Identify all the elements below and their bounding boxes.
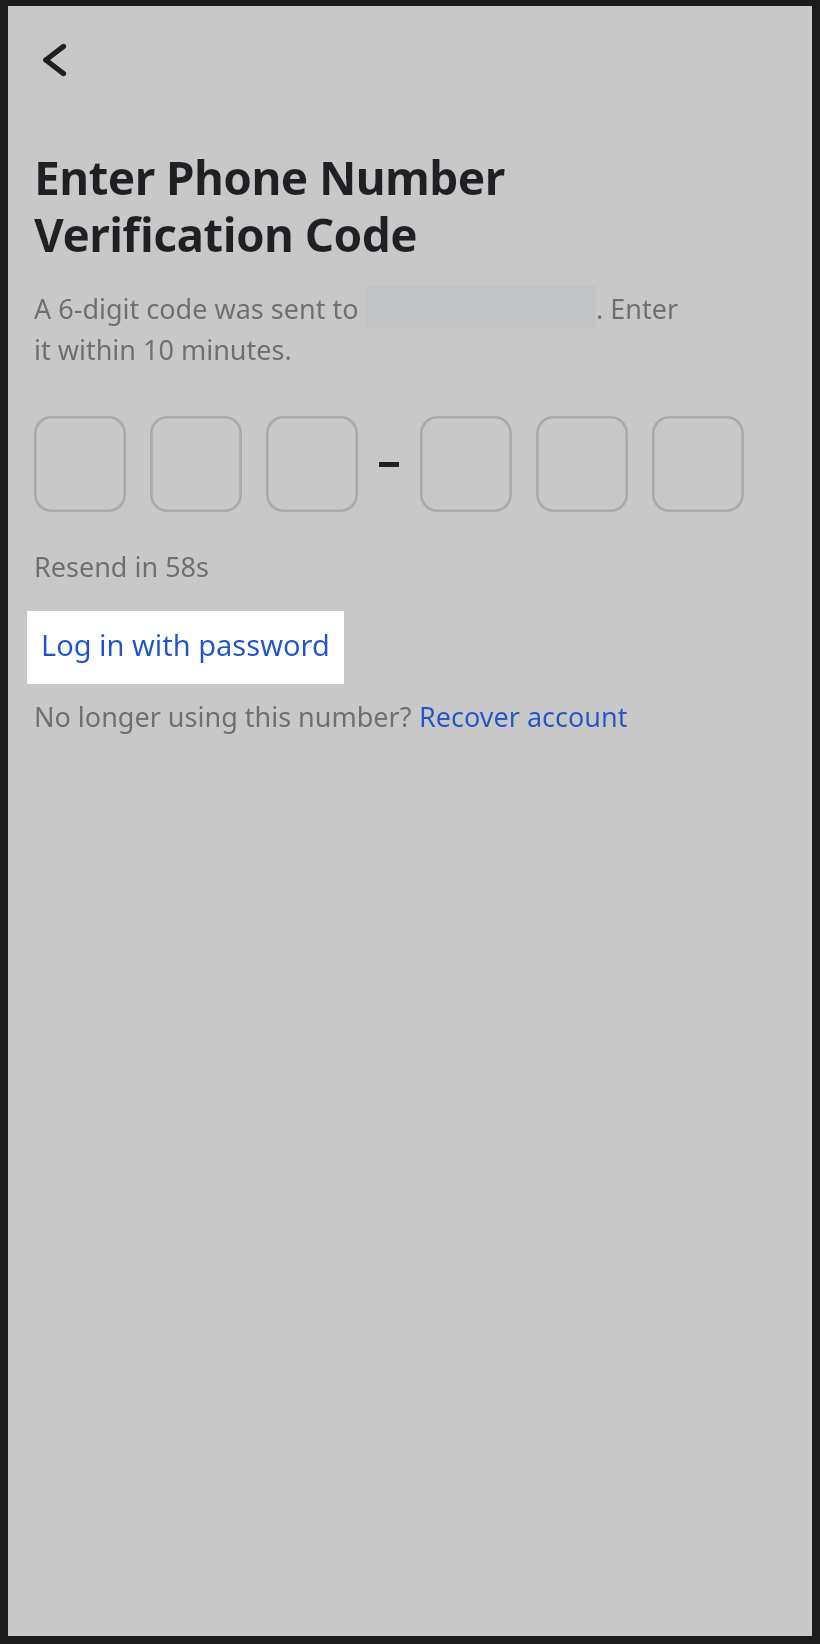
button[interactable]: Verification code digit (420, 416, 512, 512)
button[interactable]: Verification code digit (266, 416, 358, 512)
button[interactable]: Verification code digit (150, 416, 242, 512)
staticText: No longer using this number? (34, 698, 419, 735)
button[interactable]: Recover account (419, 698, 628, 735)
button[interactable]: Verification code digit (652, 416, 744, 512)
staticText: Recover account (419, 698, 628, 735)
button[interactable]: Verification code digit (536, 416, 628, 512)
staticText: A 6-digit code was sent to (34, 290, 366, 327)
staticText: Log in with password (41, 625, 330, 664)
staticText: Resend in 58s (34, 548, 209, 585)
button[interactable]: Verification code digit (34, 416, 126, 512)
button[interactable]: Log in with password (27, 611, 344, 684)
staticText: Enter Phone Number Verification Code (34, 146, 505, 265)
staticText: it within 10 minutes. (34, 331, 292, 368)
button[interactable]: Back (22, 28, 86, 92)
staticText: . Enter (596, 290, 679, 327)
